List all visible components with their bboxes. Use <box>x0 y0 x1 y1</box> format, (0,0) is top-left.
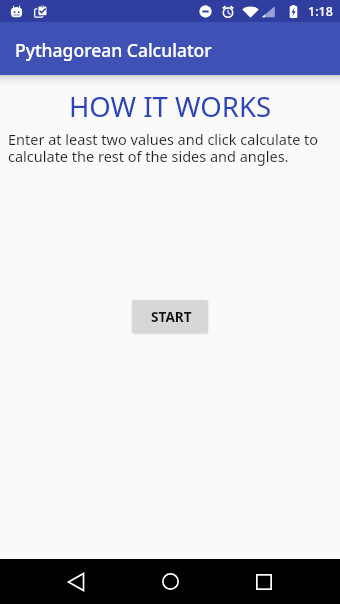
button[interactable]: Recent apps <box>241 559 287 604</box>
staticText: START <box>151 307 192 326</box>
button[interactable]: Home <box>147 559 193 604</box>
button[interactable]: Back <box>53 559 99 604</box>
staticText: Pythagorean Calculator <box>15 38 212 62</box>
staticText: 1:18 <box>308 3 333 20</box>
button[interactable]: START <box>132 300 208 333</box>
staticText: HOW IT WORKS <box>0 88 340 125</box>
staticText: Enter at least two values and click calc… <box>8 129 332 166</box>
